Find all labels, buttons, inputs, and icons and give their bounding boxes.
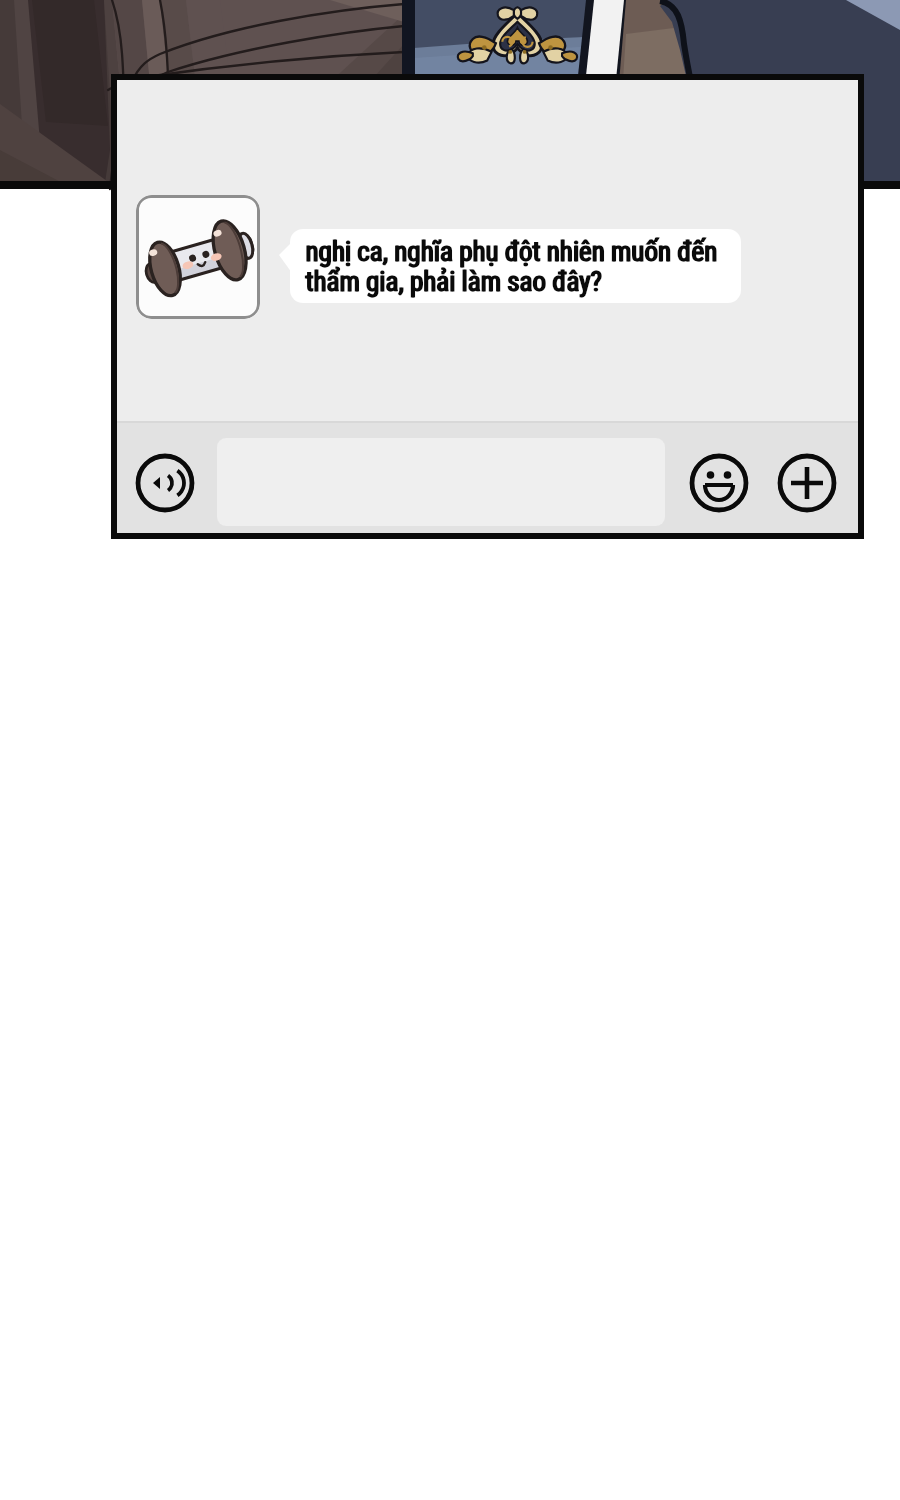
staticText: nghị ca, nghĩa phụ đột nhiên muốn đến th… [305,236,717,297]
staticText: nghị ca, nghĩa phụ đột nhiên muốn đến th… [306,236,718,297]
button[interactable]: Emoji [689,453,749,513]
button[interactable]: Add attachment [777,453,837,513]
button[interactable]: nghị ca, nghĩa phụ đột nhiên muốn đến th… [290,229,741,303]
button[interactable]: Sender avatar [136,195,260,319]
button[interactable]: Voice message [135,453,195,513]
